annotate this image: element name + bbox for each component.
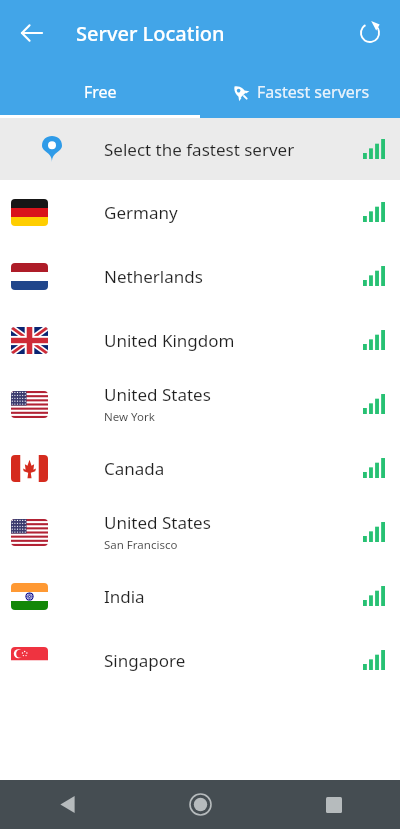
staticText: Canada xyxy=(104,457,165,480)
button[interactable]: Home xyxy=(134,780,267,829)
staticText: Netherlands xyxy=(104,265,203,288)
button[interactable]: Singapore xyxy=(0,628,400,692)
staticText: San Francisco xyxy=(104,537,178,553)
staticText: Free xyxy=(84,81,117,103)
staticText: United States xyxy=(104,383,211,406)
button[interactable]: Back xyxy=(0,780,134,829)
staticText: Fastest servers xyxy=(257,81,370,103)
button[interactable]: United States xyxy=(0,500,400,564)
staticText: United States xyxy=(104,511,211,534)
button[interactable]: Fastest servers xyxy=(200,66,400,118)
staticText: India xyxy=(104,585,145,608)
button[interactable]: Refresh xyxy=(346,9,394,57)
staticText: Singapore xyxy=(104,649,186,672)
staticText: Select the fastest server xyxy=(104,138,348,161)
button[interactable]: Germany xyxy=(0,180,400,244)
button[interactable]: India xyxy=(0,564,400,628)
button[interactable]: United Kingdom xyxy=(0,308,400,372)
button[interactable]: Select the fastest server xyxy=(0,118,400,180)
button[interactable]: Recent apps xyxy=(267,780,400,829)
staticText: United Kingdom xyxy=(104,329,235,352)
button[interactable]: Back xyxy=(8,9,56,57)
staticText: New York xyxy=(104,409,155,425)
button[interactable]: Canada xyxy=(0,436,400,500)
button[interactable]: Netherlands xyxy=(0,244,400,308)
button[interactable]: United States xyxy=(0,372,400,436)
staticText: Germany xyxy=(104,201,178,224)
staticText: Server Location xyxy=(76,20,225,47)
button[interactable]: Free xyxy=(0,66,200,118)
